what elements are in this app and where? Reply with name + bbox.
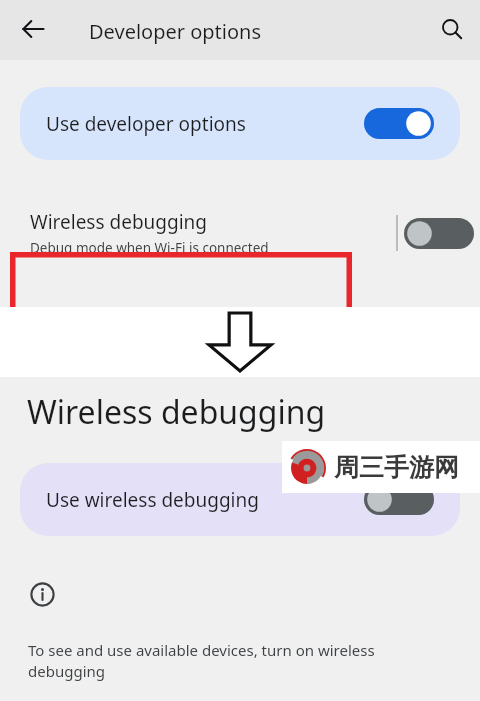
staticText: 周三手游网 <box>334 452 459 483</box>
button[interactable]: Wireless debugging toggle <box>398 193 480 273</box>
staticText: Use developer options <box>46 111 364 137</box>
button[interactable]: Wireless debugging <box>0 193 480 273</box>
staticText: Wireless debugging <box>30 209 208 235</box>
staticText: To see and use available devices, turn o… <box>28 640 375 682</box>
button[interactable]: Search <box>429 6 475 52</box>
button[interactable]: Toggle off <box>404 218 474 249</box>
button[interactable]: Use developer options <box>20 87 460 160</box>
staticText: Wireless debugging <box>27 390 326 434</box>
button[interactable]: Information <box>28 580 56 608</box>
staticText: Debug mode when Wi-Fi is connected <box>30 239 269 257</box>
button[interactable]: Toggle off <box>364 484 434 515</box>
staticText: Developer options <box>89 18 262 45</box>
button[interactable]: Back <box>10 6 56 52</box>
staticText: Use wireless debugging <box>46 487 364 513</box>
button[interactable]: Toggle on <box>364 108 434 139</box>
button[interactable]: Use wireless debugging <box>20 463 460 536</box>
